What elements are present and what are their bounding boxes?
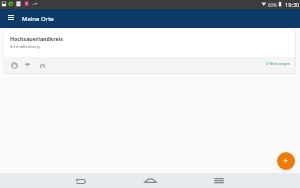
staticText: Schmallenberg bbox=[10, 44, 40, 50]
staticText: Meine Orte bbox=[22, 15, 54, 23]
button[interactable]: Hochsauerlandkreis bbox=[4, 30, 295, 73]
staticText: 60% bbox=[268, 2, 277, 8]
button[interactable]: Menü bbox=[1, 8, 20, 27]
button[interactable]: Übersicht bbox=[207, 173, 231, 188]
button[interactable]: Startbildschirm bbox=[138, 173, 162, 188]
button[interactable]: Hochwasser bbox=[23, 61, 32, 70]
button[interactable]: Ort hinzufügen bbox=[277, 152, 295, 170]
button[interactable]: Zurück bbox=[69, 173, 93, 188]
staticText: Hochsauerlandkreis bbox=[10, 35, 63, 42]
button[interactable]: Unwetterwarnung bbox=[10, 61, 19, 70]
staticText: 19:30 bbox=[285, 1, 300, 9]
staticText: 0 Warnungen bbox=[266, 61, 291, 66]
button[interactable]: Brandgefahr bbox=[38, 61, 47, 70]
